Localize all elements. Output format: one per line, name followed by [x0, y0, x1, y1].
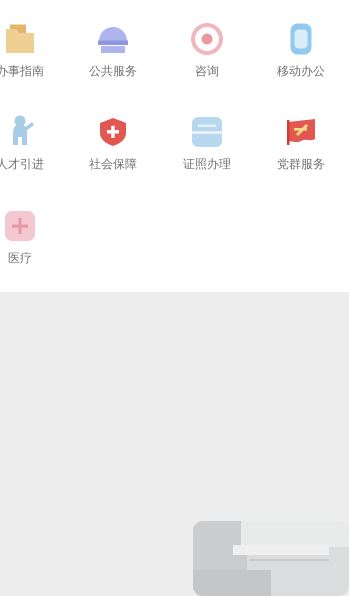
staticText: 党群服务 [277, 157, 325, 171]
staticText: 公共服务 [89, 64, 137, 78]
button[interactable]: 社会保障 [67, 116, 159, 180]
button[interactable]: 公共服务 [67, 23, 159, 87]
button[interactable]: 医疗 [0, 210, 66, 274]
staticText: 人才引进 [0, 157, 44, 171]
button[interactable]: 证照办理 [161, 116, 253, 180]
button[interactable]: 移动办公 [255, 23, 347, 87]
button[interactable]: 办事指南 [0, 23, 66, 87]
staticText: 证照办理 [183, 157, 231, 171]
button[interactable]: 人才引进 [0, 116, 66, 180]
staticText: 社会保障 [89, 157, 137, 171]
button[interactable]: 党群服务 [255, 116, 347, 180]
staticText: 咨询 [195, 64, 219, 78]
staticText: 医疗 [8, 251, 32, 265]
button[interactable]: 咨询 [161, 23, 253, 87]
staticText: 办事指南 [0, 64, 44, 78]
staticText: 移动办公 [277, 64, 325, 78]
button[interactable]: Article [193, 521, 349, 596]
